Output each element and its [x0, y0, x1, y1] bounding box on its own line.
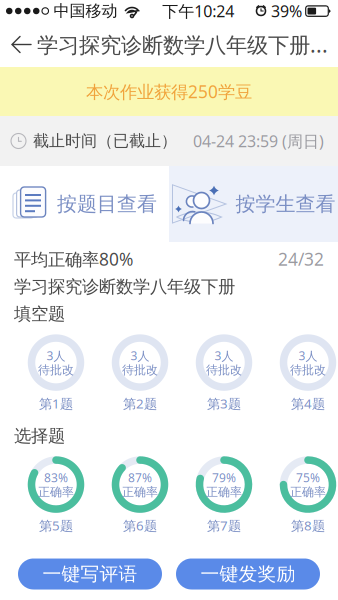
staticText: 24/32 — [278, 247, 324, 270]
staticText: 04-24 23:59 (周日) — [193, 130, 324, 152]
staticText: 一键写评语 — [42, 562, 137, 585]
staticText: 第8题 — [291, 517, 325, 534]
staticText: 待批改 — [206, 363, 242, 377]
staticText: 学习探究诊断数学八年级下册... — [37, 30, 328, 59]
button[interactable]: 3人 — [266, 335, 338, 412]
staticText: 79% — [212, 470, 236, 486]
button[interactable]: 一键发奖励 — [176, 558, 320, 589]
button[interactable]: 一键写评语 — [18, 558, 162, 589]
staticText: 待批改 — [38, 363, 74, 377]
staticText: 学习探究诊断数学八年级下册 — [14, 276, 235, 297]
staticText: 第3题 — [207, 395, 241, 412]
button[interactable]: 3人 — [14, 335, 98, 412]
button[interactable]: 返回 — [6, 22, 37, 67]
staticText: 待批改 — [290, 363, 326, 377]
staticText: 第7题 — [207, 517, 241, 534]
staticText: 第6题 — [123, 517, 157, 534]
staticText: 中国移动 — [53, 1, 117, 21]
button[interactable]: 3人 — [182, 335, 266, 412]
button[interactable]: 按题目查看 — [0, 166, 169, 242]
button[interactable]: 87% — [98, 457, 182, 534]
staticText: 一键发奖励 — [200, 562, 295, 585]
button[interactable]: 75% — [266, 457, 338, 534]
staticText: 平均正确率80% — [14, 247, 133, 270]
staticText: 75% — [296, 470, 320, 486]
button[interactable]: 3人 — [98, 335, 182, 412]
staticText: 39% — [271, 0, 302, 22]
staticText: 3人 — [46, 348, 65, 364]
staticText: 第4题 — [291, 395, 325, 412]
staticText: 第5题 — [39, 517, 73, 534]
button[interactable]: 按学生查看 — [169, 166, 338, 242]
button[interactable]: 79% — [182, 457, 266, 534]
staticText: 下午10:24 — [162, 0, 234, 22]
staticText: 按学生查看 — [235, 192, 335, 216]
staticText: 正确率 — [122, 485, 158, 499]
staticText: 3人 — [130, 348, 149, 364]
staticText: 待批改 — [122, 363, 158, 377]
staticText: 3人 — [298, 348, 317, 364]
staticText: 本次作业获得250学豆 — [86, 80, 252, 103]
staticText: 正确率 — [38, 485, 74, 499]
staticText: 按题目查看 — [57, 192, 157, 216]
staticText: 83% — [44, 470, 68, 486]
staticText: 第1题 — [39, 395, 73, 412]
staticText: 选择题 — [14, 425, 65, 447]
staticText: 截止时间（已截止） — [33, 131, 177, 151]
staticText: 第2题 — [123, 395, 157, 412]
staticText: 3人 — [214, 348, 233, 364]
staticText: 正确率 — [290, 485, 326, 499]
staticText: 正确率 — [206, 485, 242, 499]
staticText: 填空题 — [14, 303, 65, 325]
staticText: 87% — [128, 470, 152, 486]
button[interactable]: 83% — [14, 457, 98, 534]
